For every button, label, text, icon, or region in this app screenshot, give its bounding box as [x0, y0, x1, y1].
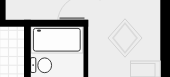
button[interactable]: Bathroom floor plan: [0, 0, 170, 77]
